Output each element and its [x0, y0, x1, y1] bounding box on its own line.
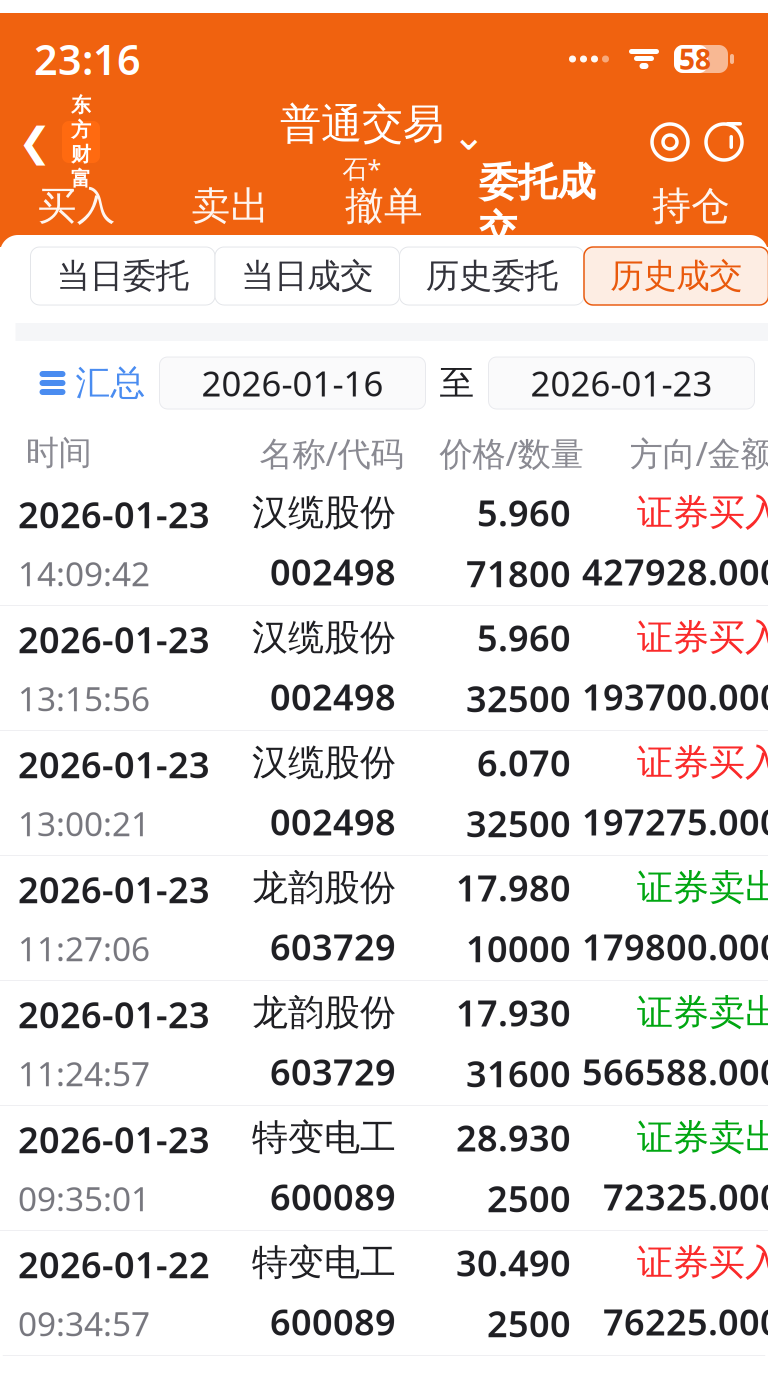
staticText: 持仓 — [652, 182, 730, 230]
button[interactable]: 2026-01-23 — [0, 481, 768, 606]
button[interactable]: 买入 — [0, 179, 154, 247]
staticText: 13:00:21 — [18, 801, 150, 846]
button[interactable]: 委托成交 — [461, 179, 614, 247]
staticText: 2026-01-16 — [201, 360, 383, 406]
staticText: 委托成交 — [479, 158, 596, 253]
staticText: 2026-01-23 — [18, 740, 210, 788]
staticText: 财富 — [71, 142, 91, 191]
staticText: 2500 — [487, 1299, 571, 1347]
staticText: 证券卖出 — [637, 990, 768, 1035]
button[interactable]: 2026-01-23 — [0, 856, 768, 981]
staticText: 002498 — [270, 798, 396, 845]
staticText: 买入 — [38, 182, 116, 230]
staticText: 方向/金额 — [629, 431, 768, 475]
staticText: 石* — [342, 152, 381, 185]
staticText: 普通交易 — [280, 99, 444, 150]
staticText: 2026-01-22 — [18, 1240, 210, 1288]
button[interactable]: 历史成交 — [584, 247, 768, 305]
staticText: 汇总 — [75, 362, 145, 404]
button[interactable]: 卖出 — [154, 179, 307, 247]
staticText: 证券买入 — [637, 740, 768, 785]
staticText: 2026-01-23 — [18, 615, 210, 663]
staticText: 至 — [439, 362, 474, 404]
staticText: 当日委托 — [57, 255, 189, 296]
staticText: 11:24:57 — [18, 1051, 150, 1096]
button[interactable]: 设置 — [648, 120, 692, 164]
staticText: 14:09:42 — [18, 551, 150, 596]
staticText: 汉缆股份 — [252, 615, 396, 660]
staticText: 价格/数量 — [439, 431, 583, 475]
staticText: 603729 — [270, 1048, 396, 1095]
staticText: 5.960 — [477, 489, 571, 536]
staticText: 11:27:06 — [18, 926, 150, 971]
staticText: 历史委托 — [426, 255, 558, 296]
staticText: 71800 — [466, 549, 571, 597]
staticText: 600089 — [270, 1298, 396, 1345]
staticText: 427928.000 — [582, 548, 768, 595]
staticText: 2026-01-23 — [18, 490, 210, 538]
staticText: 当日成交 — [241, 255, 373, 296]
button[interactable]: 持仓 — [614, 179, 768, 247]
staticText: ⌄ — [452, 113, 486, 159]
button[interactable]: 返回 东方财富 — [0, 105, 118, 179]
staticText: 603729 — [270, 923, 396, 970]
button[interactable]: 汇总 — [15, 355, 159, 411]
staticText: 2026-01-23 — [530, 360, 712, 406]
staticText: 5.960 — [477, 614, 571, 661]
button[interactable]: 普通交易 — [280, 105, 486, 179]
staticText: 证券买入 — [637, 615, 768, 660]
staticText: 09:35:01 — [18, 1176, 150, 1221]
staticText: 10000 — [466, 924, 571, 972]
staticText: 东方 — [71, 93, 91, 142]
button[interactable]: 2026-01-16 — [159, 357, 425, 409]
staticText: 2026-01-23 — [18, 990, 210, 1038]
staticText: 32500 — [466, 799, 571, 847]
staticText: 名称/代码 — [259, 431, 403, 475]
staticText: 时间 — [25, 432, 91, 473]
button[interactable]: 2026-01-22 — [0, 1231, 768, 1356]
staticText: 2500 — [487, 1174, 571, 1222]
staticText: 证券卖出 — [637, 1115, 768, 1160]
staticText: 30.490 — [456, 1239, 571, 1286]
staticText: 特变电工 — [252, 1115, 396, 1160]
staticText: 23:16 — [34, 32, 141, 86]
button[interactable]: 2026-01-23 — [0, 731, 768, 856]
button[interactable]: 2026-01-23 — [0, 606, 768, 731]
staticText: 58 — [679, 40, 711, 78]
staticText: ❮ — [18, 119, 52, 165]
staticText: 证券买入 — [637, 490, 768, 535]
staticText: 193700.000 — [582, 673, 768, 720]
staticText: 汉缆股份 — [252, 740, 396, 785]
staticText: 179800.000 — [582, 923, 768, 970]
button[interactable]: 刷新 — [702, 120, 746, 164]
staticText: 76225.000 — [603, 1298, 768, 1345]
staticText: 13:15:56 — [18, 676, 150, 721]
button[interactable]: 2026-01-23 — [0, 1106, 768, 1231]
staticText: 2026-01-23 — [18, 1115, 210, 1163]
staticText: 6.070 — [477, 739, 571, 786]
button[interactable]: 当日委托 — [30, 247, 215, 305]
staticText: 卖出 — [191, 182, 269, 230]
button[interactable]: 当日成交 — [215, 247, 399, 305]
button[interactable]: 2026-01-23 — [0, 981, 768, 1106]
staticText: 证券卖出 — [637, 865, 768, 910]
staticText: 28.930 — [456, 1114, 571, 1161]
staticText: 汉缆股份 — [252, 490, 396, 535]
staticText: 002498 — [270, 673, 396, 720]
staticText: 证券买入 — [637, 1240, 768, 1285]
staticText: 32500 — [466, 674, 571, 722]
staticText: 撤单 — [345, 182, 423, 230]
staticText: 2026-01-23 — [18, 865, 210, 913]
button[interactable]: 历史委托 — [399, 247, 584, 305]
staticText: 72325.000 — [603, 1173, 768, 1220]
button[interactable]: 2026-01-23 — [488, 357, 754, 409]
staticText: 197275.000 — [582, 798, 768, 845]
staticText: 龙韵股份 — [252, 990, 396, 1035]
staticText: 17.930 — [456, 989, 571, 1036]
staticText: 09:34:57 — [18, 1301, 150, 1346]
staticText: 31600 — [466, 1049, 571, 1097]
button[interactable]: 撤单 — [307, 179, 461, 247]
staticText: 历史成交 — [610, 255, 742, 296]
staticText: 17.980 — [456, 864, 571, 911]
staticText: 特变电工 — [252, 1240, 396, 1285]
